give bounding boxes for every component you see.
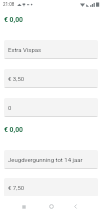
staticText: Jeugdvergunning tot 14 jaar [8,156,83,163]
button[interactable]: 0 [4,98,98,117]
staticText: 21:08 [3,2,15,7]
staticText: € 0,00 [4,126,23,134]
staticText: € 7,50 [8,184,25,191]
button[interactable]: Jeugdvergunning tot 14 jaar [4,150,98,169]
button[interactable]: Back [62,197,88,215]
button[interactable]: Extra Vispas [4,40,98,59]
staticText: € 0,00 [4,16,23,24]
button[interactable]: € 3,50 [4,69,98,88]
staticText: 0 [8,104,12,111]
button[interactable]: € 7,50 [4,178,98,197]
button[interactable]: Recents [11,197,37,215]
button[interactable]: Home [38,197,64,215]
staticText: € 3,50 [8,75,25,82]
staticText: Extra Vispas [8,46,42,53]
